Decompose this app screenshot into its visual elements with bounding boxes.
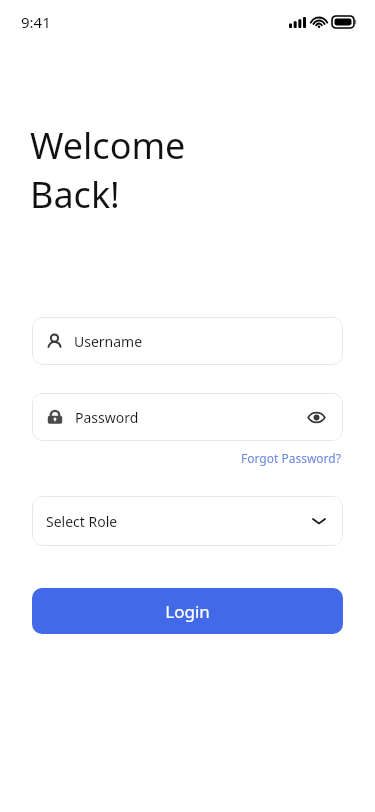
button[interactable]: Forgot Password? — [239, 448, 343, 468]
button[interactable]: Password — [32, 393, 343, 441]
staticText: Forgot Password? — [241, 450, 341, 466]
button[interactable]: Login — [32, 588, 343, 634]
staticText: Username — [74, 332, 143, 351]
staticText: Back! — [30, 170, 120, 219]
staticText: 9:41 — [21, 12, 51, 32]
staticText: Welcome — [30, 121, 186, 170]
staticText: Select Role — [46, 512, 311, 531]
staticText: Login — [165, 600, 210, 623]
staticText: Password — [75, 408, 301, 427]
button[interactable]: Select Role — [32, 496, 343, 546]
button[interactable]: Show password — [301, 402, 331, 432]
button[interactable]: Username — [32, 317, 343, 365]
